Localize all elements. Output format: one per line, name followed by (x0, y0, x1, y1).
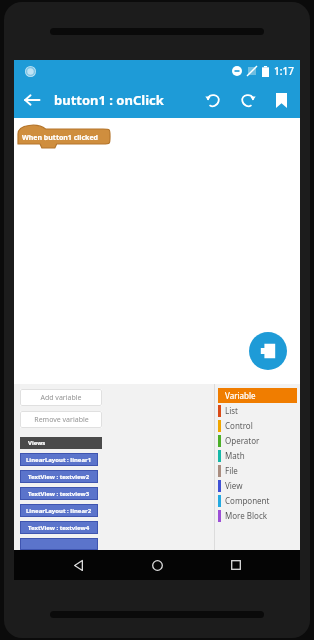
staticText: More Block (225, 510, 268, 521)
staticText: Views (28, 439, 46, 447)
button[interactable]: List (218, 403, 297, 418)
staticText: Variable (225, 390, 256, 401)
staticText: TextView : textview4 (28, 524, 90, 532)
staticText: Remove variable (34, 415, 89, 425)
button[interactable]: Undo (196, 83, 230, 117)
button[interactable]: Control (218, 418, 297, 433)
button[interactable]: Math (218, 448, 297, 463)
staticText: File (225, 465, 238, 476)
button[interactable]: TextView : textview4 (20, 521, 98, 534)
button[interactable]: TextView : textview2 (20, 470, 98, 483)
button[interactable] (20, 538, 98, 550)
button[interactable]: LinearLayout : linear1 (20, 453, 98, 466)
staticText: When button1 clicked (22, 133, 99, 143)
staticText: Component (225, 495, 270, 506)
staticText: 1:17 (274, 64, 294, 78)
button[interactable]: LinearLayout : linear2 (20, 504, 98, 517)
button[interactable]: Back (63, 550, 93, 580)
button[interactable]: Add block (249, 332, 287, 370)
button[interactable]: Add variable (20, 389, 102, 406)
button[interactable]: File (218, 463, 297, 478)
button[interactable]: TextView : textview3 (20, 487, 98, 500)
button[interactable]: Recents (221, 550, 251, 580)
button[interactable]: Operator (218, 433, 297, 448)
staticText: List (225, 405, 238, 416)
staticText: button1 : onClick (54, 91, 196, 109)
button[interactable]: More Block (218, 508, 297, 523)
button[interactable]: Redo (230, 83, 264, 117)
staticText: Add variable (40, 393, 82, 403)
staticText: View (225, 480, 243, 491)
button[interactable]: Home (142, 550, 172, 580)
button[interactable]: Component (218, 493, 297, 508)
staticText: LinearLayout : linear2 (26, 507, 92, 515)
button[interactable]: Variable (218, 388, 297, 403)
button[interactable]: View (218, 478, 297, 493)
button[interactable]: Back (14, 82, 50, 118)
staticText: Math (225, 450, 245, 461)
staticText: LinearLayout : linear1 (26, 456, 92, 464)
staticText: Control (225, 420, 253, 431)
button[interactable]: Remove variable (20, 411, 102, 428)
button[interactable]: Save (264, 83, 298, 117)
staticText: TextView : textview2 (28, 473, 90, 481)
staticText: TextView : textview3 (28, 490, 90, 498)
staticText: Operator (225, 435, 260, 446)
button[interactable]: When button1 clicked (18, 126, 110, 150)
